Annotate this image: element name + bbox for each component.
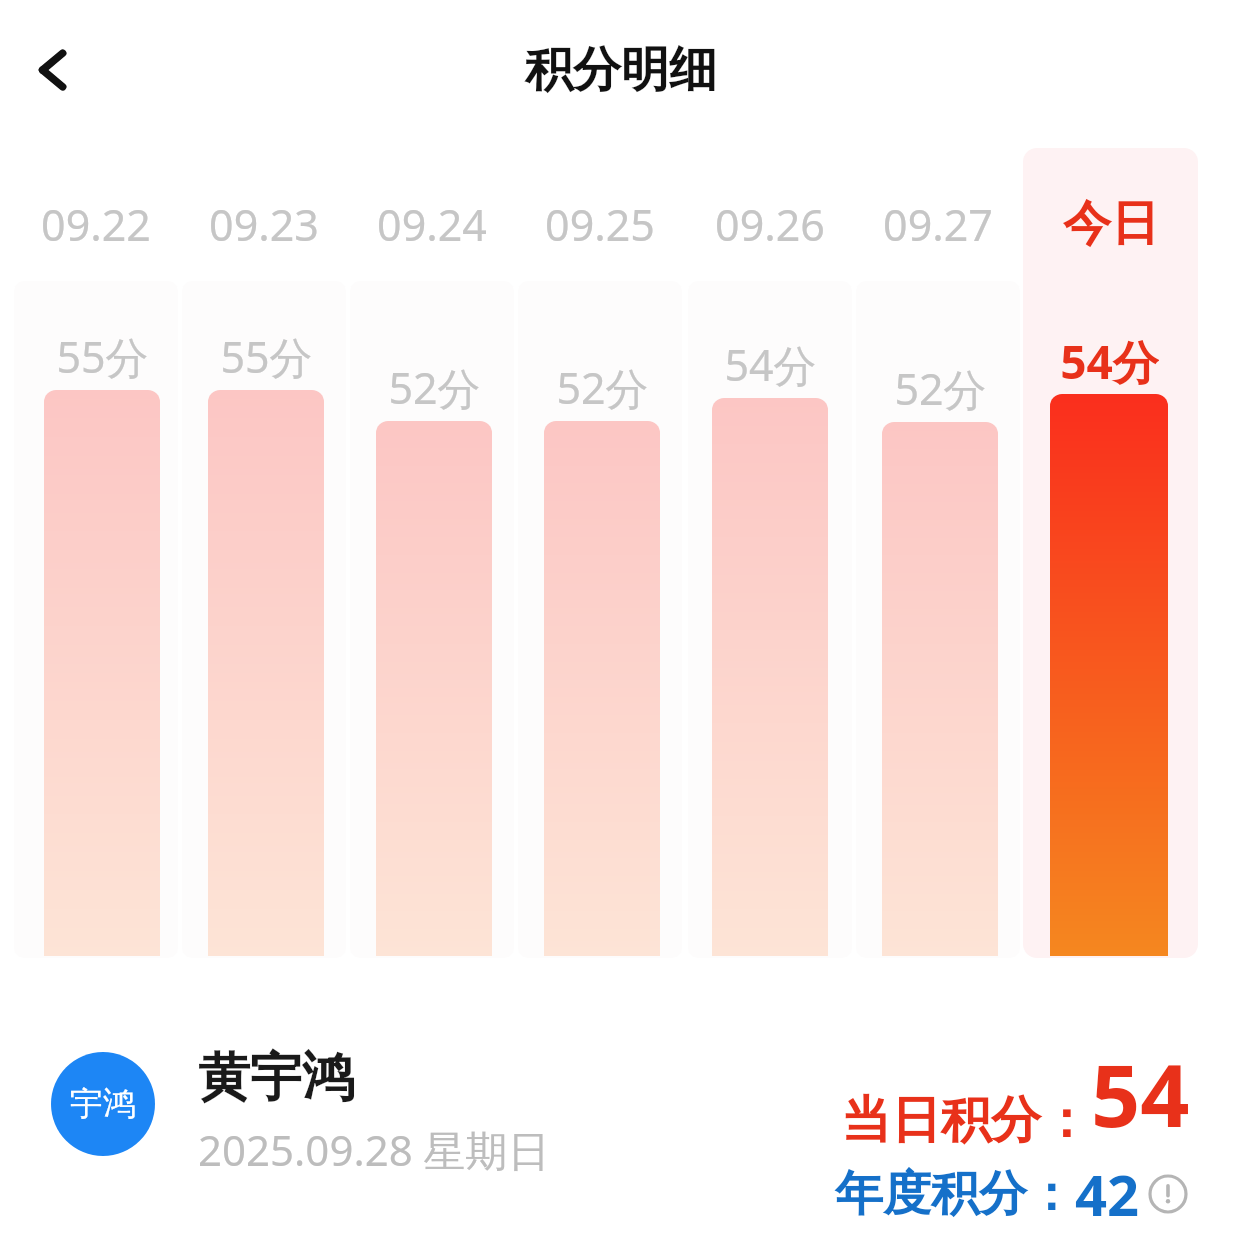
button[interactable] [208, 390, 324, 956]
staticText: 52分 [894, 359, 987, 418]
staticText: 积分明细 [525, 40, 717, 100]
staticText: 42 [1075, 1156, 1140, 1232]
button[interactable] [712, 398, 828, 956]
button[interactable] [544, 421, 660, 956]
staticText: 今日 [1063, 194, 1159, 254]
staticText: 55分 [56, 327, 149, 386]
staticText: 09.22 [41, 195, 151, 254]
staticText: 09.23 [209, 195, 319, 254]
button[interactable]: 09.26 [688, 188, 852, 260]
staticText: 09.25 [545, 195, 655, 254]
staticText: 54 [1091, 1035, 1190, 1152]
staticText: 54分 [724, 335, 817, 394]
button[interactable]: 09.22 [14, 188, 178, 260]
button[interactable]: 09.27 [856, 188, 1020, 260]
button[interactable]: 宇鸿 [51, 1052, 155, 1156]
button[interactable]: 09.23 [182, 188, 346, 260]
staticText: 52分 [556, 358, 649, 417]
staticText: 54分 [1060, 330, 1159, 390]
staticText: 09.26 [715, 195, 825, 254]
button[interactable] [1050, 394, 1168, 956]
staticText: 55分 [220, 327, 313, 386]
button[interactable] [376, 421, 492, 956]
staticText: 黄宇鸿 [198, 1045, 354, 1111]
button[interactable]: 09.24 [350, 188, 514, 260]
staticText: 09.24 [377, 195, 487, 254]
button[interactable]: 年度积分： [835, 1156, 1190, 1232]
staticText: 当日积分： [841, 1089, 1091, 1152]
button[interactable] [882, 422, 998, 956]
staticText: 宇鸿 [70, 1083, 136, 1125]
staticText: 年度积分： [835, 1164, 1075, 1224]
button[interactable] [44, 390, 160, 956]
staticText: 09.27 [883, 195, 993, 254]
staticText: 2025.09.28 星期日 [198, 1121, 550, 1178]
other: Info [1146, 1172, 1190, 1216]
button[interactable]: 今日 [1023, 188, 1198, 260]
staticText: 52分 [388, 358, 481, 417]
button[interactable]: Back [8, 22, 104, 118]
button[interactable]: 09.25 [518, 188, 682, 260]
